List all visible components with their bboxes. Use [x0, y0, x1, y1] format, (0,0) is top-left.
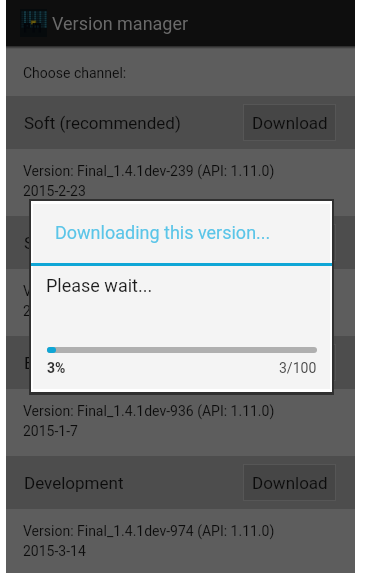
staticText: 3/100 — [279, 360, 317, 376]
staticText: 2015-1-7 — [23, 423, 78, 439]
button[interactable]: Development — [6, 456, 355, 509]
staticText: Development — [24, 473, 124, 493]
staticText: Download — [252, 353, 328, 373]
staticText: Version: Final_1.4.1dev-936 (API: 1.11.0… — [23, 403, 275, 419]
staticText: Soft (recommended) — [24, 113, 181, 133]
button[interactable]: Stable — [6, 216, 355, 269]
button[interactable]: Download — [243, 464, 336, 501]
staticText: 2015-3-14 — [23, 543, 86, 559]
button[interactable]: App icon — [20, 9, 47, 37]
staticText: Version: Final_1.4.1dev-974 (API: 1.11.0… — [23, 523, 275, 539]
staticText: Downloading this version... — [55, 222, 271, 243]
button[interactable]: Soft (recommended) — [6, 96, 355, 149]
staticText: Download — [252, 113, 328, 133]
staticText: Download — [252, 473, 328, 493]
button[interactable]: Download — [243, 104, 336, 141]
staticText: Version: Final_1.4.1dev-120 (API: 1.11.0… — [23, 283, 275, 299]
button[interactable]: Beta — [6, 336, 355, 389]
staticText: Download — [252, 233, 328, 253]
staticText: 2015-2-23 — [23, 183, 86, 199]
button[interactable]: Download — [243, 224, 336, 261]
staticText: 3% — [47, 360, 66, 376]
staticText: Version manager — [52, 13, 189, 34]
button[interactable]: Download — [243, 344, 336, 381]
staticText: Choose channel: — [23, 65, 127, 81]
staticText: 2015-2-1 — [23, 303, 78, 319]
staticText: Beta — [24, 353, 59, 373]
staticText: Stable — [24, 233, 72, 253]
staticText: Version: Final_1.4.1dev-239 (API: 1.11.0… — [23, 163, 275, 179]
staticText: Please wait... — [46, 275, 153, 296]
